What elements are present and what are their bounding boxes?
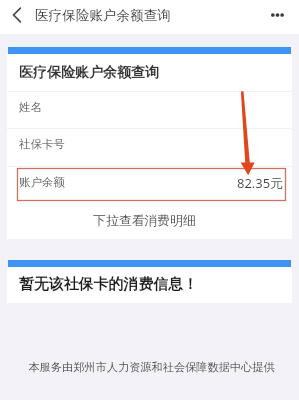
button[interactable]: 姓名 xyxy=(7,92,292,128)
staticText: 医疗保险账户余额查询 xyxy=(19,64,159,82)
button[interactable]: More options xyxy=(260,0,294,30)
staticText: 82.35元 xyxy=(237,174,284,192)
staticText: 医疗保险账户余额查询 xyxy=(35,7,171,24)
staticText: 姓名 xyxy=(19,100,42,114)
staticText: 下拉查看消费明细 xyxy=(2,213,287,229)
staticText: 账户余额 xyxy=(19,175,65,189)
staticText: 暂无该社保卡的消费信息！ xyxy=(19,275,198,294)
staticText: 社保卡号 xyxy=(19,137,65,151)
button[interactable]: 社保卡号 xyxy=(7,129,292,166)
staticText: 本服务由郑州市人力资源和社会保障数据中心提供 xyxy=(2,360,299,374)
button[interactable]: Back xyxy=(0,0,33,30)
